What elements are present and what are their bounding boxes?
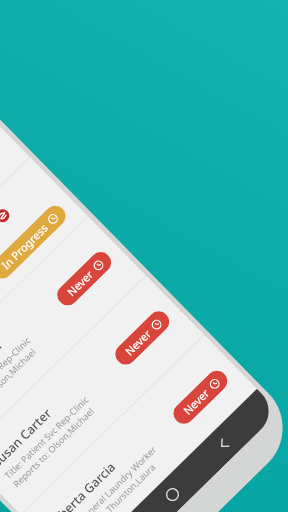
staticText: In Progress <box>0 220 51 272</box>
button[interactable]: Homer Simpson <box>79 394 279 512</box>
staticText: Never <box>180 385 212 418</box>
button[interactable]: Dorothy Davis <box>0 157 88 396</box>
staticText: Alberta Garcia <box>46 458 119 512</box>
button[interactable]: Trevor Aaron <box>0 98 30 337</box>
button[interactable]: Never <box>111 307 174 369</box>
staticText: Never <box>64 267 96 299</box>
staticText: Title: General Laundry Worker <box>60 443 159 512</box>
staticText: Reports to: Thurston,Laura <box>68 460 158 512</box>
button[interactable]: Alberta Garcia <box>21 335 263 512</box>
staticText: Reports to: Olson,Michael <box>10 405 96 489</box>
button[interactable]: Susan Carter <box>0 276 204 512</box>
staticText: Title: Patient Svc Rep-Clinic <box>0 334 33 422</box>
button[interactable]: Never <box>53 248 115 310</box>
staticText: Title: Patient Svc Rep-Clinic <box>2 393 91 481</box>
staticText: Reports to: Olson,Michael <box>0 345 38 430</box>
button[interactable]: Home <box>148 470 196 512</box>
button[interactable]: In Progress <box>0 201 70 283</box>
staticText: Michael Brown <box>0 337 6 412</box>
staticText: Susan Carter <box>0 405 55 471</box>
button[interactable]: Never <box>169 366 232 428</box>
staticText: Never <box>122 326 154 358</box>
other: Sync status <box>0 206 12 225</box>
button[interactable]: Back <box>199 420 247 468</box>
staticText: Homer Simpson <box>104 510 176 512</box>
button[interactable]: Michael Brown <box>0 216 146 456</box>
